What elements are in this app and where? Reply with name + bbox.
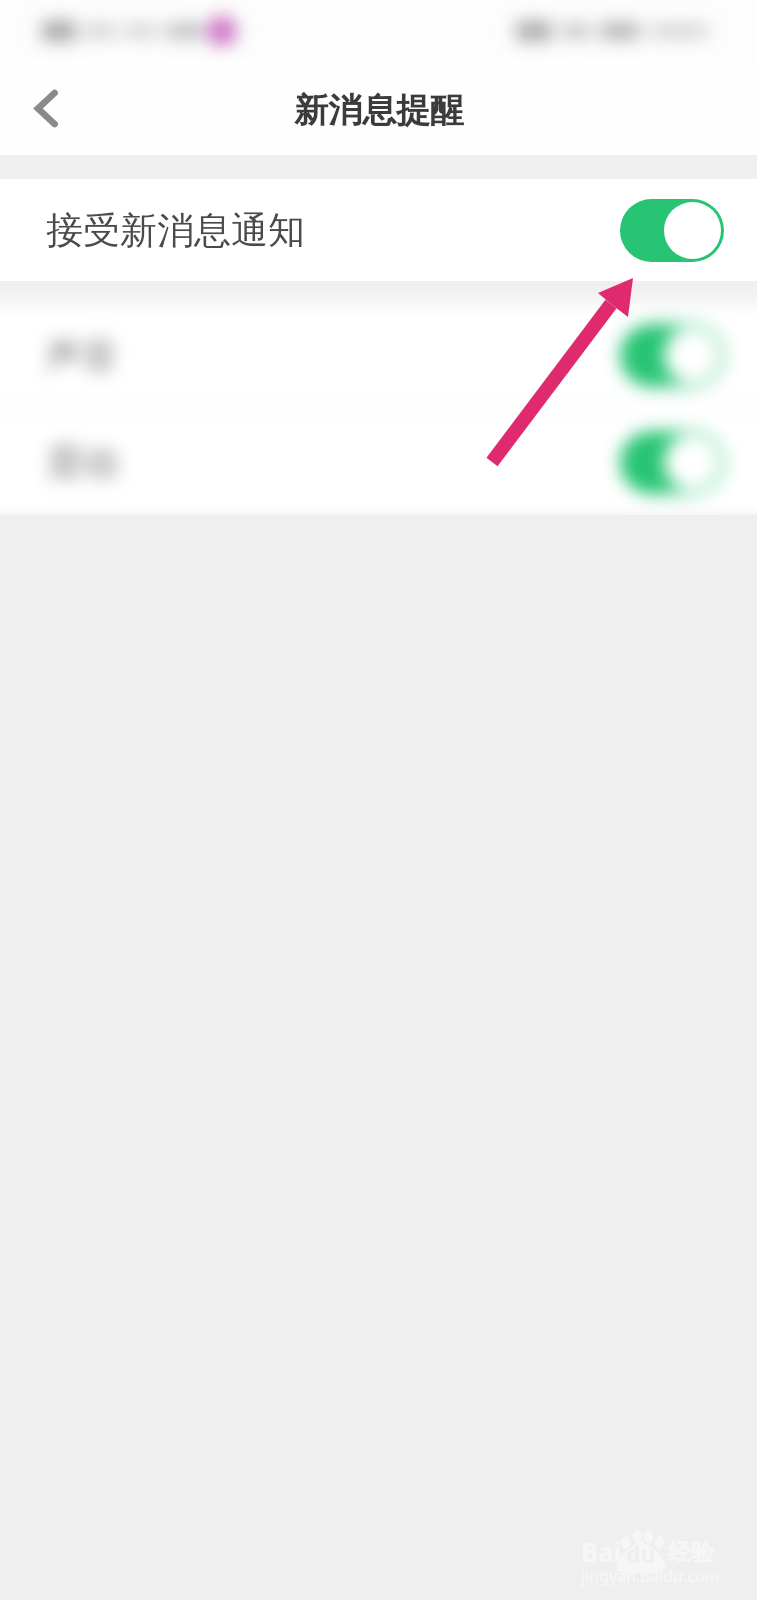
button[interactable]: Toggle 震动, on xyxy=(620,431,724,494)
staticText: 声音 xyxy=(46,333,118,378)
staticText: du xyxy=(626,1538,656,1569)
button[interactable]: 接受新消息通知 xyxy=(0,179,757,281)
staticText: 接受新消息通知 xyxy=(46,207,305,254)
staticText: Bai xyxy=(581,1534,622,1569)
button[interactable]: 声音 xyxy=(0,303,757,407)
staticText: 新消息提醒 xyxy=(294,89,464,132)
button[interactable]: Back xyxy=(0,60,88,155)
staticText: 震动 xyxy=(46,440,118,485)
button[interactable]: Toggle 声音, on xyxy=(620,324,724,387)
button[interactable]: Toggle receive new message notifications… xyxy=(620,199,724,262)
staticText: 经验 xyxy=(668,1538,714,1567)
button[interactable]: 震动 xyxy=(0,409,757,515)
